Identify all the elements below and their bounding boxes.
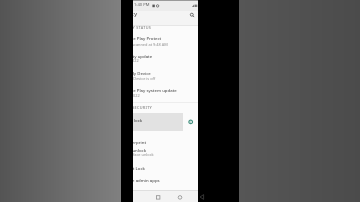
staticText: Use face unlock bbox=[125, 152, 154, 157]
staticText: Google Play Protect bbox=[121, 35, 162, 41]
button[interactable] bbox=[199, 193, 206, 201]
button[interactable] bbox=[94, 160, 198, 175]
staticText: No active apps bbox=[103, 182, 130, 187]
button[interactable] bbox=[94, 133, 198, 148]
staticText: SECURITY STATUS bbox=[115, 25, 152, 30]
button[interactable] bbox=[189, 12, 196, 19]
button[interactable] bbox=[176, 193, 184, 201]
staticText: Google Play system update bbox=[121, 87, 177, 93]
button[interactable] bbox=[94, 67, 198, 85]
staticText: March 5, 2022 bbox=[113, 58, 139, 63]
staticText: Fingerprint bbox=[123, 139, 147, 145]
staticText: Face unlock bbox=[122, 147, 147, 153]
staticText: Screen lock bbox=[119, 117, 143, 123]
button[interactable] bbox=[94, 175, 198, 190]
staticText: Apps scanned at 9:48 AM bbox=[122, 42, 168, 47]
staticText: Security update bbox=[120, 53, 153, 59]
button[interactable] bbox=[94, 146, 198, 159]
staticText: DEVICE SECURITY bbox=[116, 105, 153, 110]
staticText: Find My Device is off bbox=[118, 76, 156, 81]
staticText: 1:40 PM bbox=[134, 2, 150, 8]
staticText: Device admin apps bbox=[121, 177, 160, 183]
staticText: Smart Lock bbox=[122, 165, 145, 171]
staticText: Find My Device bbox=[120, 70, 151, 76]
button[interactable] bbox=[94, 11, 198, 25]
button[interactable] bbox=[94, 113, 183, 131]
staticText: Security bbox=[114, 10, 138, 18]
button[interactable] bbox=[94, 32, 198, 50]
button[interactable] bbox=[94, 49, 198, 67]
button[interactable] bbox=[154, 193, 162, 201]
button[interactable] bbox=[94, 84, 198, 102]
button[interactable] bbox=[187, 118, 195, 126]
staticText: March 5, 2022 bbox=[114, 93, 140, 98]
